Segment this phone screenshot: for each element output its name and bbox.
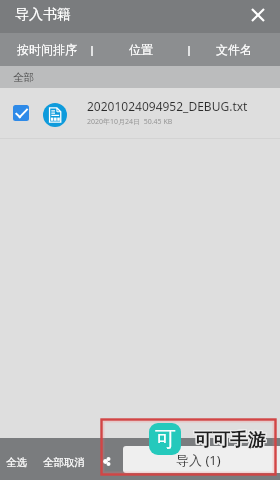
staticText: 文件名 — [216, 42, 252, 57]
staticText: 20201024094952_DEBUG.txt — [87, 98, 248, 114]
staticText: 可可手游 — [194, 430, 266, 453]
button[interactable]: 全选 — [2, 450, 31, 475]
staticText: 可可手游 — [195, 430, 267, 453]
staticText: 可可手游 — [194, 429, 266, 452]
staticText: 可可手游 — [193, 430, 265, 453]
staticText: 可可手游 — [193, 429, 265, 452]
button[interactable]: 按时间排序 — [0, 33, 94, 66]
staticText: 全选 — [6, 456, 27, 469]
staticText: 按时间排序 — [17, 42, 77, 57]
button[interactable]: 位置 — [94, 33, 187, 66]
button[interactable]: 导入 (1) — [123, 446, 280, 473]
staticText: 可可手游 — [194, 428, 266, 451]
staticText: 可可手游 — [195, 429, 267, 452]
staticText: 导入 (1) — [176, 451, 221, 469]
staticText: 可 — [155, 426, 176, 452]
staticText: 导入书籍 — [15, 6, 71, 24]
staticText: 可可手游 — [195, 428, 267, 451]
staticText: 位置 — [129, 42, 153, 57]
button[interactable]: Close — [247, 4, 269, 26]
button[interactable]: 文件名 — [187, 33, 280, 66]
button[interactable]: 20201024094952_DEBUG.txt — [0, 88, 280, 139]
staticText: 全部 — [13, 71, 34, 84]
staticText: 可可手游 — [193, 428, 265, 451]
staticText: 全部取消 — [43, 456, 85, 469]
button[interactable]: 全部取消 — [39, 450, 89, 475]
staticText: 2020年10月24日 50.45 KB — [87, 117, 173, 127]
